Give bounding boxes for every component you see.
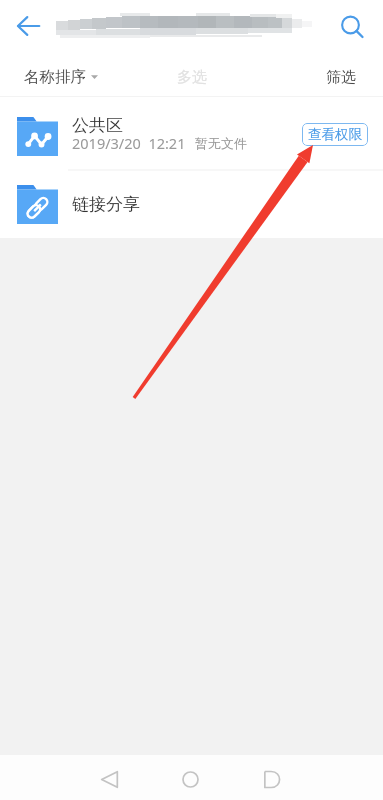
staticText: 链接分享 — [72, 194, 140, 215]
staticText: 公共区 — [72, 115, 123, 136]
button[interactable]: 查看权限 — [302, 123, 368, 146]
staticText: 名称排序 — [24, 67, 86, 87]
button[interactable]: 链接分享 — [0, 171, 383, 238]
staticText: 筛选 — [326, 68, 356, 87]
staticText: 多选 — [177, 68, 207, 87]
button[interactable]: 筛选 — [320, 62, 362, 93]
button[interactable]: 名称排序 — [21, 62, 101, 92]
button[interactable]: Back — [9, 7, 47, 45]
staticText: 暂无文件 — [195, 135, 247, 151]
button[interactable]: Recent apps — [249, 757, 295, 800]
staticText: 查看权限 — [308, 126, 362, 143]
button[interactable]: Home — [167, 757, 213, 800]
button[interactable]: Search — [333, 8, 371, 46]
button[interactable]: 多选 — [171, 62, 213, 93]
staticText: 2019/3/20 12:21 — [72, 133, 186, 153]
button[interactable]: 公共区 — [0, 97, 383, 169]
button[interactable]: Back — [86, 757, 132, 800]
